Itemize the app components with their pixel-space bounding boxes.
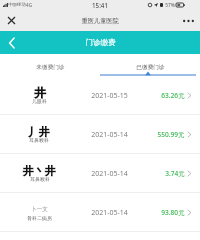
staticText: 耳鼻喉科 [29, 137, 49, 143]
staticText: 井丶井 [23, 164, 56, 178]
button[interactable]: 卜一文 [0, 193, 200, 232]
staticText: 井 [34, 85, 46, 100]
staticText: 57% [165, 2, 175, 9]
button[interactable]: 未缴费门诊 [0, 54, 100, 76]
staticText: 550.99元 [157, 130, 185, 139]
button[interactable]: 丿井 [0, 115, 200, 154]
staticText: 3.74元 [165, 169, 185, 178]
staticText: 未缴费门诊 [36, 64, 65, 71]
staticText: 2021-05-14 [91, 208, 128, 218]
button[interactable]: More options [181, 15, 195, 27]
staticText: 卜一文 [31, 206, 48, 213]
staticText: 已缴费门诊 [136, 64, 165, 71]
staticText: 93.80元 [161, 208, 185, 217]
button[interactable]: 井 [0, 76, 200, 115]
button[interactable]: Close [5, 14, 18, 27]
staticText: 中国移动 [8, 2, 26, 8]
button[interactable]: Back [4, 35, 19, 50]
staticText: 15:41 [92, 1, 108, 9]
staticText: 骨科二病房 [27, 215, 52, 221]
staticText: 63.26元 [161, 91, 185, 100]
staticText: 门诊缴费 [85, 38, 116, 48]
staticText: 儿眼科 [32, 98, 47, 104]
staticText: 4G [26, 2, 32, 8]
staticText: 耳鼻喉科 [30, 176, 50, 182]
button[interactable]: 已缴费门诊 [100, 54, 200, 76]
staticText: 2021-05-14 [91, 130, 128, 140]
staticText: 2021-05-15 [91, 91, 128, 101]
button[interactable]: 井丶井 [0, 154, 200, 193]
staticText: 重医儿童医院 [81, 17, 119, 25]
staticText: 丿井 [28, 125, 50, 139]
staticText: 2021-05-14 [91, 169, 128, 179]
